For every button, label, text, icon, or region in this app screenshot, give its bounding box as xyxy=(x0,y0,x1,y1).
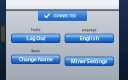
button[interactable]: English xyxy=(65,34,113,42)
button[interactable]: CONNECTED xyxy=(38,11,87,20)
button[interactable]: Log Out xyxy=(11,34,60,42)
staticText: Miner Settings xyxy=(71,58,108,65)
staticText: CONNECTED xyxy=(53,13,76,18)
staticText: Name xyxy=(31,49,40,53)
staticText: Change Name xyxy=(19,56,53,63)
staticText: Profile xyxy=(31,28,41,32)
button[interactable]: Change Name xyxy=(11,55,60,63)
button[interactable]: Miner Settings xyxy=(65,57,113,65)
staticText: Log Out xyxy=(26,35,45,42)
staticText: English xyxy=(80,35,99,42)
staticText: Language xyxy=(82,28,97,32)
